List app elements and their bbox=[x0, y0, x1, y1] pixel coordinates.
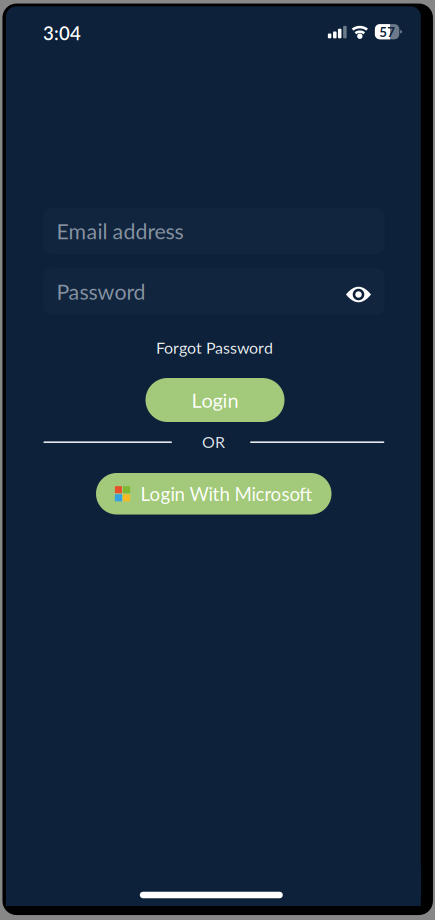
button[interactable]: Login bbox=[145, 378, 284, 422]
staticText: Password bbox=[56, 279, 145, 304]
staticText: Forgot Password bbox=[156, 338, 273, 357]
button[interactable]: Login With Microsoft bbox=[96, 473, 331, 514]
staticText: 57 bbox=[379, 24, 395, 40]
staticText: Email address bbox=[56, 218, 183, 243]
button[interactable]: Forgot Password bbox=[156, 338, 273, 357]
staticText: Login With Microsoft bbox=[141, 483, 313, 505]
staticText: Login bbox=[191, 388, 238, 412]
staticText: 3:04 bbox=[43, 22, 81, 44]
button[interactable]: Email address bbox=[43, 208, 384, 254]
button[interactable]: Show password bbox=[340, 281, 376, 308]
button[interactable]: Password bbox=[43, 268, 384, 314]
staticText: OR bbox=[202, 432, 225, 451]
